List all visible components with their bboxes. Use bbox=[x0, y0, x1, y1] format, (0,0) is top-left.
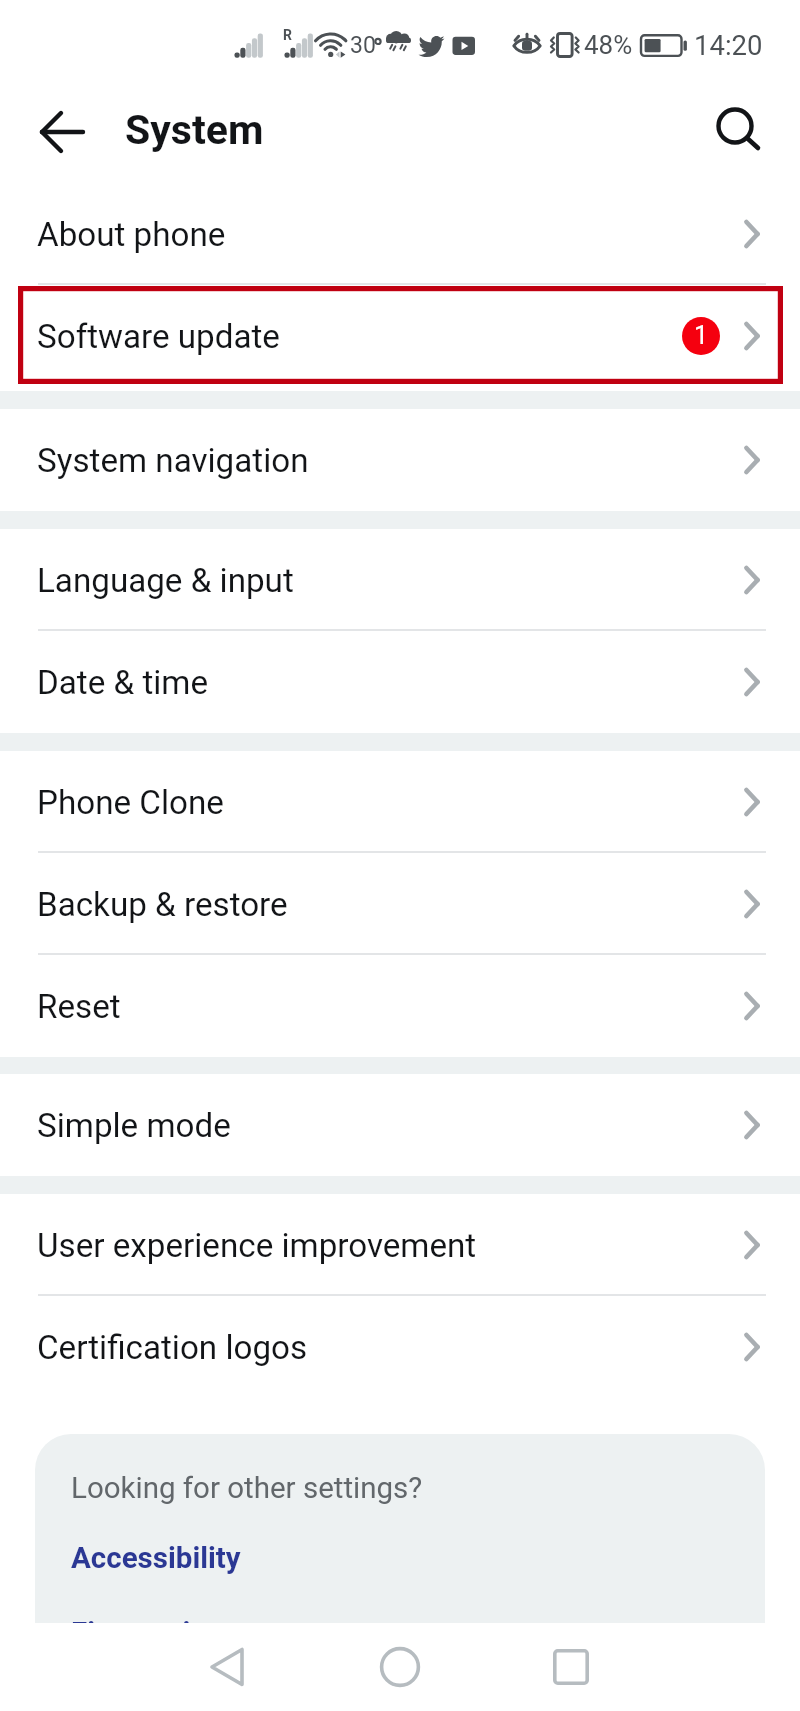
button[interactable]: Backup & restore bbox=[0, 853, 800, 955]
staticText: Backup & restore bbox=[37, 885, 743, 924]
staticText: 30 bbox=[350, 32, 376, 59]
button[interactable]: Language & input bbox=[0, 529, 800, 631]
staticText: Accessibility bbox=[71, 1541, 241, 1576]
staticText: Date & time bbox=[37, 663, 743, 702]
staticText: Phone Clone bbox=[37, 783, 743, 822]
staticText: System bbox=[125, 106, 264, 154]
button[interactable]: Back bbox=[0, 80, 126, 183]
button[interactable]: Search bbox=[699, 94, 775, 170]
staticText: Fingerprint bbox=[71, 1616, 217, 1651]
button[interactable]: Simple mode bbox=[0, 1074, 800, 1176]
staticText: Looking for other settings? bbox=[71, 1471, 423, 1506]
button[interactable]: Certification logos bbox=[0, 1296, 800, 1398]
button[interactable]: Reset bbox=[0, 955, 800, 1057]
staticText: 1 bbox=[694, 321, 709, 350]
button[interactable]: Recent apps bbox=[516, 1623, 626, 1711]
button[interactable]: User experience improvement bbox=[0, 1194, 800, 1296]
button[interactable]: Back bbox=[173, 1623, 283, 1711]
staticText: About phone bbox=[37, 215, 743, 254]
button[interactable]: About phone bbox=[0, 183, 800, 285]
staticText: Reset bbox=[37, 987, 743, 1026]
staticText: Software update bbox=[37, 317, 682, 356]
staticText: Certification logos bbox=[37, 1328, 743, 1367]
staticText: Simple mode bbox=[37, 1106, 743, 1145]
button[interactable]: System navigation bbox=[0, 409, 800, 511]
button[interactable]: Date & time bbox=[0, 631, 800, 733]
button[interactable]: Looking for other settings? bbox=[35, 1434, 765, 1694]
staticText: System navigation bbox=[37, 441, 743, 480]
staticText: User experience improvement bbox=[37, 1226, 743, 1265]
staticText: 48% bbox=[584, 30, 633, 60]
staticText: R bbox=[283, 27, 292, 43]
staticText: 14:20 bbox=[694, 29, 763, 61]
button[interactable]: Software update bbox=[0, 285, 800, 387]
staticText: Language & input bbox=[37, 561, 743, 600]
button[interactable]: Home bbox=[345, 1623, 455, 1711]
button[interactable]: Phone Clone bbox=[0, 751, 800, 853]
